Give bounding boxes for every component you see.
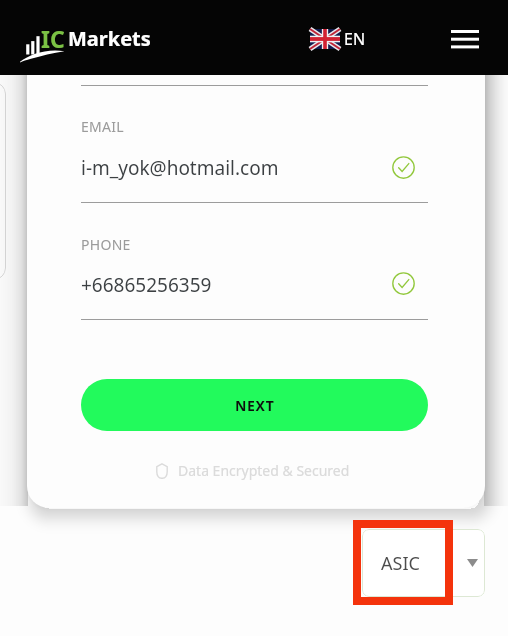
staticText: NEXT (235, 396, 275, 415)
staticText: Data Encrypted & Secured (178, 461, 350, 480)
staticText: i-m_yok@hotmail.com (81, 155, 279, 181)
staticText: EMAIL (81, 117, 125, 136)
button[interactable]: NEXT (81, 379, 428, 431)
staticText: ASIC (381, 551, 420, 576)
button[interactable]: Menu (443, 18, 487, 62)
button[interactable]: ASIC (362, 529, 485, 597)
staticText: IC (41, 23, 65, 54)
button[interactable]: IC Markets home (18, 23, 153, 63)
staticText: +66865256359 (81, 272, 212, 298)
staticText: EN (344, 28, 366, 50)
button[interactable]: EN (310, 28, 366, 50)
button[interactable]: Data Encrypted & Secured (156, 461, 350, 480)
staticText: PHONE (81, 235, 131, 254)
staticText: Markets (68, 25, 151, 52)
